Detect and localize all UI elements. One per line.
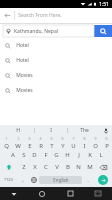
- staticText: 5: [50, 136, 53, 141]
- staticText: 6: [61, 136, 64, 141]
- staticText: Hotel: [16, 42, 29, 49]
- button[interactable]: Backspace: [95, 161, 112, 173]
- button[interactable]: 8: [79, 136, 90, 149]
- staticText: 9: [94, 136, 97, 141]
- button[interactable]: Search From Here.: [15, 8, 112, 23]
- staticText: 3: [28, 136, 31, 141]
- staticText: Search From Here.: [18, 12, 62, 19]
- button[interactable]: X: [29, 161, 40, 173]
- button[interactable]: S: [18, 149, 29, 161]
- staticText: S: [22, 151, 26, 159]
- staticText: G: [54, 151, 59, 159]
- staticText: 2: [17, 136, 20, 141]
- staticText: J: [78, 151, 80, 159]
- button[interactable]: Z: [18, 161, 29, 173]
- button[interactable]: Go: [93, 173, 112, 186]
- button[interactable]: Change language: [28, 173, 39, 186]
- staticText: X: [33, 163, 37, 171]
- button[interactable]: Voice input: [100, 125, 112, 136]
- staticText: M: [87, 163, 93, 171]
- button[interactable]: J: [73, 149, 84, 161]
- button[interactable]: 7: [68, 136, 79, 149]
- staticText: 1: [5, 136, 8, 141]
- staticText: L: [99, 151, 103, 159]
- button[interactable]: V: [51, 161, 62, 173]
- button[interactable]: D: [29, 149, 40, 161]
- button[interactable]: ,: [17, 173, 28, 186]
- button[interactable]: A: [7, 149, 18, 161]
- button[interactable]: 9: [90, 136, 101, 149]
- staticText: Z: [22, 163, 26, 171]
- button[interactable]: Shift: [0, 161, 18, 173]
- button[interactable]: Movies: [0, 68, 112, 83]
- button[interactable]: B: [62, 161, 73, 173]
- button[interactable]: Kathmandu, Nepal: [3, 25, 94, 37]
- button[interactable]: F: [40, 149, 51, 161]
- button[interactable]: N: [73, 161, 84, 173]
- staticText: N: [76, 163, 81, 171]
- staticText: P: [105, 142, 109, 149]
- staticText: V: [55, 163, 59, 171]
- button[interactable]: 2: [12, 136, 24, 149]
- staticText: 1:51: [99, 1, 109, 8]
- staticText: ,: [22, 176, 24, 184]
- button[interactable]: Hotel: [0, 38, 112, 53]
- staticText: Movies: [16, 72, 33, 79]
- staticText: H: [65, 151, 70, 159]
- button[interactable]: English: [39, 176, 82, 184]
- staticText: W: [15, 142, 21, 149]
- staticText: A: [11, 151, 15, 159]
- button[interactable]: Recents: [56, 187, 84, 200]
- button[interactable]: M: [84, 161, 95, 173]
- staticText: H: [16, 127, 20, 134]
- staticText: 7: [72, 136, 75, 141]
- button[interactable]: 4: [35, 136, 46, 149]
- button[interactable]: Switch keyboard: [84, 187, 112, 200]
- staticText: 0: [105, 136, 108, 141]
- button[interactable]: Hide keyboard: [0, 187, 28, 200]
- button[interactable]: Home: [28, 187, 56, 200]
- staticText: .: [87, 176, 89, 184]
- staticText: O: [93, 142, 98, 149]
- button[interactable]: L: [95, 149, 106, 161]
- button[interactable]: 5: [46, 136, 57, 149]
- button[interactable]: H: [2, 125, 34, 136]
- button[interactable]: Search: [94, 25, 112, 37]
- staticText: The: [80, 127, 89, 134]
- staticText: Hotel: [16, 57, 29, 64]
- staticText: K: [88, 151, 92, 159]
- staticText: I: [83, 142, 86, 149]
- button[interactable]: ?123: [0, 173, 17, 186]
- staticText: Y: [61, 142, 65, 149]
- button[interactable]: G: [51, 149, 62, 161]
- button[interactable]: 1: [0, 136, 12, 149]
- staticText: English: [53, 177, 69, 183]
- button[interactable]: The: [68, 125, 100, 136]
- staticText: T: [50, 142, 54, 149]
- staticText: D: [32, 151, 37, 159]
- staticText: Movies: [16, 87, 33, 94]
- staticText: Kathmandu, Nepal: [14, 28, 58, 35]
- staticText: 8: [83, 136, 86, 141]
- button[interactable]: 0: [101, 136, 112, 149]
- staticText: 4: [39, 136, 42, 141]
- staticText: R: [39, 142, 43, 149]
- button[interactable]: .: [82, 173, 93, 186]
- button[interactable]: 6: [57, 136, 68, 149]
- button[interactable]: 3: [24, 136, 35, 149]
- button[interactable]: Hotel: [0, 53, 112, 68]
- button[interactable]: C: [40, 161, 51, 173]
- staticText: ?123: [4, 177, 13, 182]
- button[interactable]: Movies: [0, 83, 112, 98]
- button[interactable]: Back: [0, 8, 14, 23]
- staticText: F: [44, 151, 48, 159]
- button[interactable]: K: [84, 149, 95, 161]
- staticText: E: [28, 142, 32, 149]
- staticText: B: [66, 163, 70, 171]
- staticText: U: [71, 142, 76, 149]
- button[interactable]: I: [35, 125, 67, 136]
- staticText: C: [44, 163, 48, 171]
- staticText: I: [50, 127, 52, 134]
- staticText: Q: [4, 142, 9, 149]
- button[interactable]: H: [62, 149, 73, 161]
